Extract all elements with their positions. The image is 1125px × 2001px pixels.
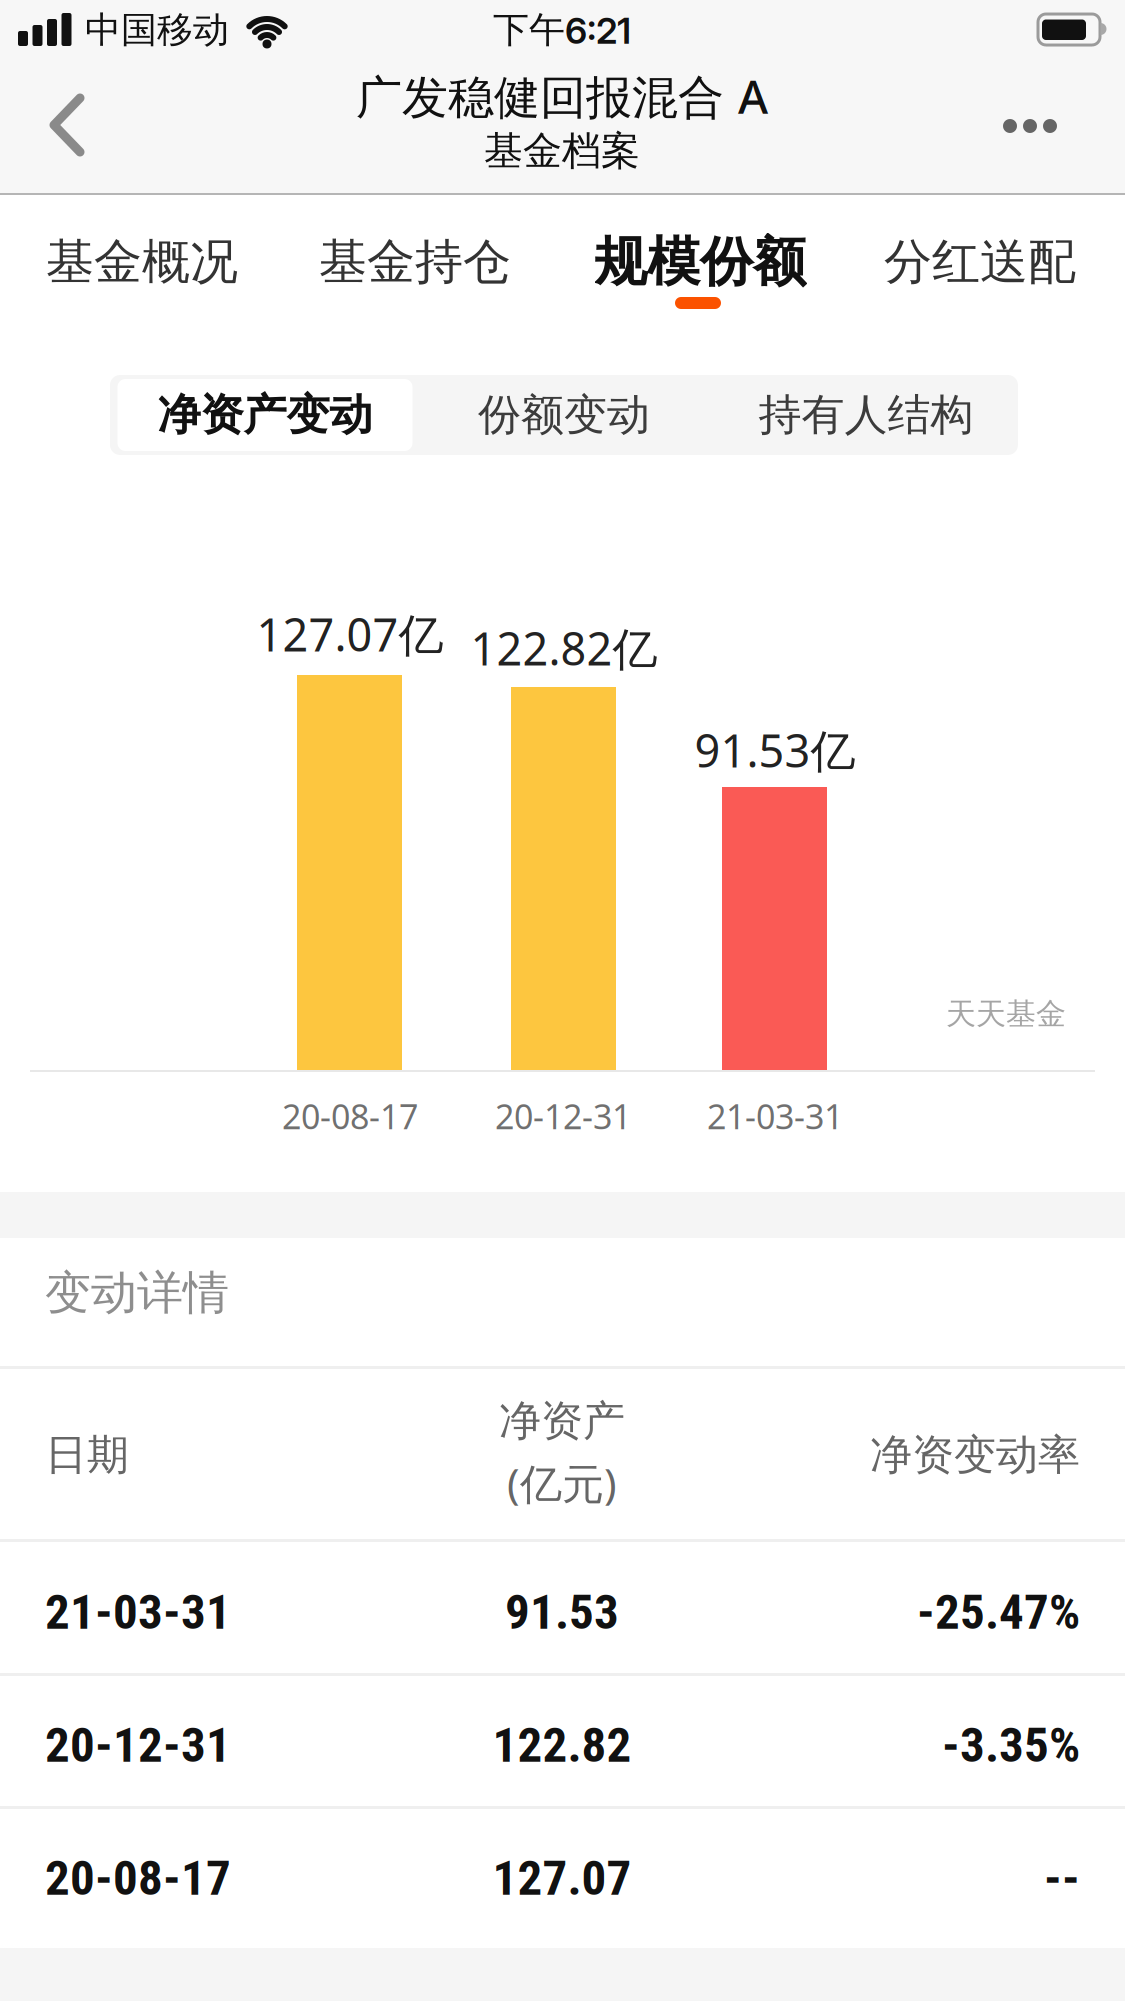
staticText: 广发稳健回报混合 A [356, 65, 768, 127]
staticText: 基金持仓 [319, 232, 511, 292]
staticText: 净资产 [499, 1394, 625, 1447]
button[interactable]: 份额变动 [414, 375, 714, 455]
staticText: 122.82亿 [470, 617, 657, 679]
staticText: 20-08-17 [45, 1849, 231, 1907]
staticText: 122.82 [492, 1716, 631, 1774]
button[interactable]: 规模份额 [550, 197, 850, 327]
staticText: 天天基金 [946, 995, 1066, 1033]
staticText: 基金档案 [484, 126, 640, 175]
button[interactable]: 净资产变动 [117, 379, 412, 451]
staticText: 下午6:21 [493, 7, 631, 53]
staticText: 127.07 [492, 1849, 631, 1907]
staticText: (亿元) [507, 1454, 617, 1512]
staticText: 净资产变动 [157, 388, 372, 442]
button[interactable] [50, 94, 90, 156]
button[interactable]: 分红送配 [850, 197, 1110, 327]
staticText: 20-12-31 [45, 1716, 231, 1774]
staticText: 日期 [45, 1428, 129, 1481]
staticText: 变动详情 [45, 1264, 229, 1322]
button[interactable]: 基金持仓 [285, 197, 545, 327]
staticText: 基金概况 [46, 232, 238, 292]
staticText: 20-08-17 [282, 1093, 418, 1139]
staticText: 91.53亿 [694, 719, 855, 781]
button[interactable] [1003, 119, 1057, 133]
staticText: 净资变动率 [870, 1428, 1080, 1481]
staticText: 21-03-31 [45, 1583, 231, 1641]
staticText: 21-03-31 [707, 1093, 843, 1139]
staticText: 持有人结构 [758, 388, 973, 442]
staticText: -3.35% [942, 1716, 1080, 1774]
staticText: 91.53 [505, 1583, 619, 1641]
staticText: 分红送配 [884, 232, 1076, 292]
staticText: -- [1044, 1849, 1080, 1907]
button[interactable]: 持有人结构 [716, 375, 1016, 455]
staticText: 中国移动 [85, 7, 229, 53]
staticText: 127.07亿 [256, 603, 443, 665]
staticText: -25.47% [917, 1583, 1080, 1641]
staticText: 规模份额 [594, 229, 806, 295]
staticText: 20-12-31 [495, 1093, 631, 1139]
staticText: 份额变动 [478, 388, 650, 442]
button[interactable]: 基金概况 [12, 197, 272, 327]
